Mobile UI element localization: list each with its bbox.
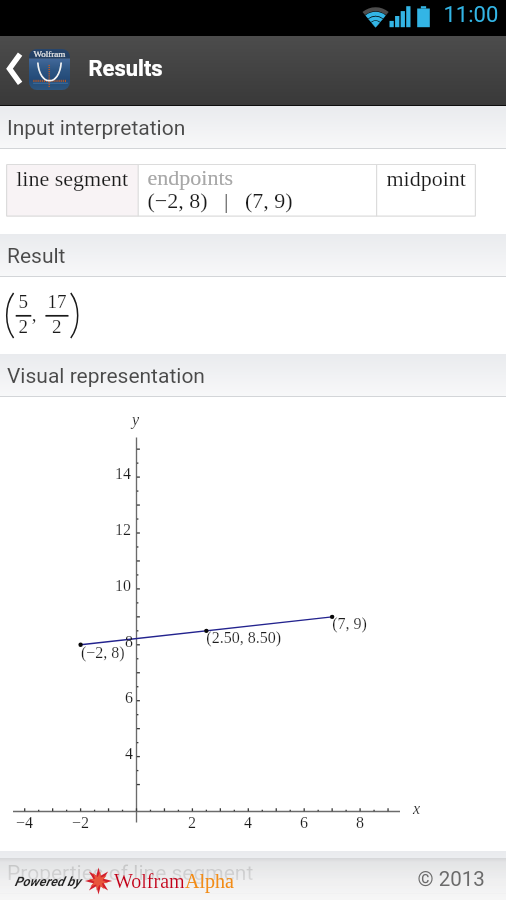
button[interactable] [0, 234, 506, 277]
button[interactable] [0, 106, 506, 149]
button[interactable]: Back [0, 36, 28, 105]
button[interactable] [0, 851, 506, 894]
button[interactable] [0, 858, 506, 900]
button[interactable] [0, 354, 506, 397]
